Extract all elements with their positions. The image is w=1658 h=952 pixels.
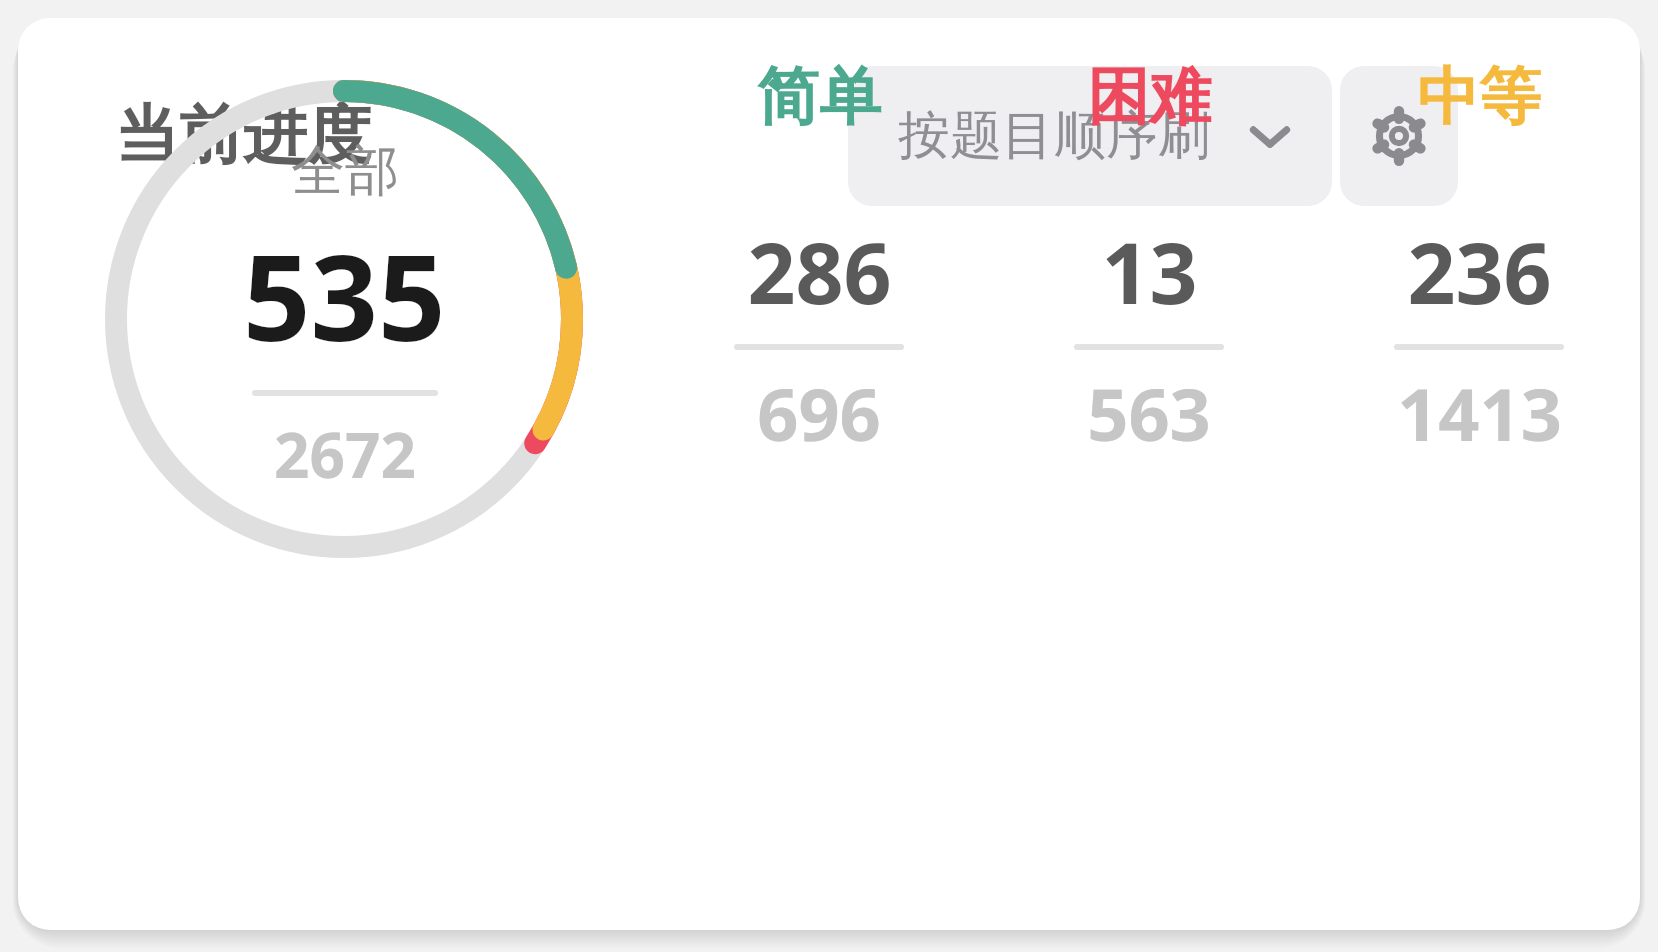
staticText: 困难 [1087,58,1211,136]
staticText: 简单 [757,58,881,136]
button[interactable]: Settings [1340,66,1458,206]
staticText: 535 [243,215,446,376]
staticText: 236 [1407,214,1552,328]
staticText: 按题目顺序刷 [898,103,1210,169]
button[interactable]: 按题目顺序刷 [848,66,1332,206]
button[interactable]: 困难 [1068,58,1230,462]
staticText: 中等 [1417,58,1541,136]
staticText: 1413 [1397,364,1562,462]
staticText: 286 [747,214,892,328]
button[interactable]: 中等 [1388,58,1570,462]
staticText: 全部 [291,137,399,205]
staticText: 696 [757,364,881,462]
staticText: 13 [1101,214,1198,328]
button[interactable]: 简单 [728,58,910,462]
staticText: 2672 [274,412,416,496]
staticText: 563 [1087,364,1211,462]
staticText: 当前进度 [115,95,371,176]
